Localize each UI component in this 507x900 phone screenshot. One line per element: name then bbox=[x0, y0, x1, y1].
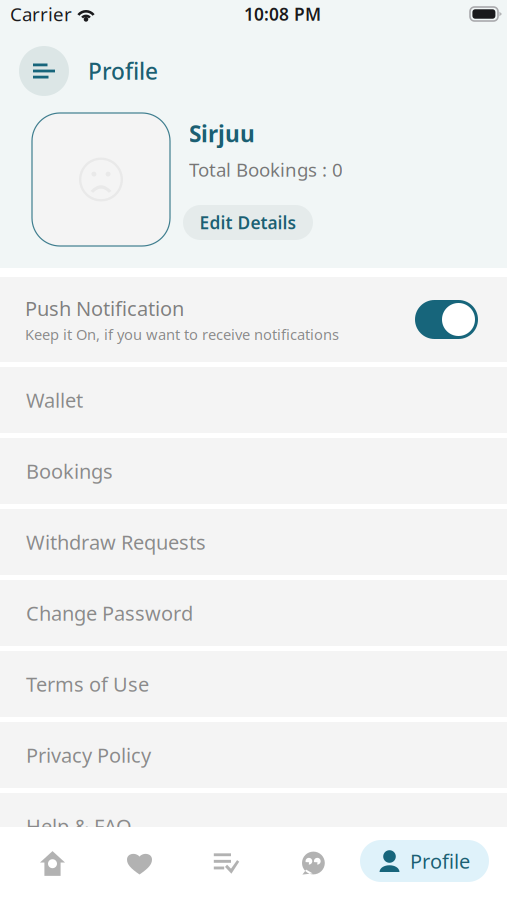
staticText: Total Bookings : 0 bbox=[189, 157, 343, 182]
button[interactable]: Terms of Use bbox=[0, 651, 507, 717]
button[interactable]: Change Password bbox=[0, 580, 507, 646]
button[interactable]: Bookings bbox=[183, 827, 270, 900]
button[interactable]: Withdraw Requests bbox=[0, 509, 507, 575]
button[interactable]: Chat bbox=[270, 827, 357, 900]
staticText: Wallet bbox=[26, 387, 83, 413]
button[interactable]: Privacy Policy bbox=[0, 722, 507, 788]
staticText: Profile bbox=[88, 56, 158, 86]
staticText: Change Password bbox=[26, 600, 193, 626]
button[interactable]: Profile bbox=[360, 840, 489, 882]
button[interactable]: Home bbox=[9, 827, 96, 900]
button[interactable]: Wallet bbox=[0, 367, 507, 433]
button[interactable]: Favourites bbox=[96, 827, 183, 900]
staticText: Help & FAQ bbox=[26, 813, 132, 839]
staticText: 10:08 PM bbox=[244, 2, 321, 25]
staticText: Edit Details bbox=[199, 211, 296, 234]
staticText: Push Notification bbox=[25, 295, 184, 322]
staticText: Terms of Use bbox=[26, 671, 149, 697]
staticText: Carrier bbox=[10, 2, 72, 26]
button[interactable]: Help & FAQ bbox=[0, 793, 507, 859]
staticText: Bookings bbox=[26, 458, 113, 484]
staticText: Withdraw Requests bbox=[26, 529, 206, 555]
button[interactable]: Edit Details bbox=[183, 205, 313, 240]
button[interactable]: About Us bbox=[0, 864, 507, 900]
button[interactable]: Push Notification bbox=[0, 277, 507, 362]
button[interactable]: Menu bbox=[19, 46, 69, 96]
button[interactable]: Bookings bbox=[0, 438, 507, 504]
staticText: Sirjuu bbox=[189, 118, 255, 148]
staticText: Keep it On, if you want to receive notif… bbox=[25, 324, 339, 344]
staticText: Privacy Policy bbox=[26, 742, 151, 768]
staticText: Profile bbox=[410, 848, 470, 874]
